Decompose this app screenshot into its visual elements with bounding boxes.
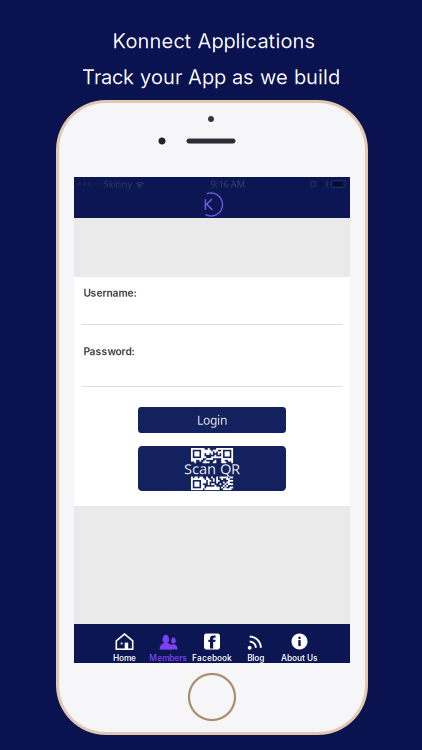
staticText: Username: xyxy=(83,287,136,299)
staticText: Facebook xyxy=(192,653,232,663)
button[interactable]: Blog xyxy=(234,624,278,663)
staticText: Members xyxy=(149,653,187,663)
staticText: About Us xyxy=(281,653,318,663)
button[interactable]: Login xyxy=(138,407,286,433)
staticText: Track your App as we build xyxy=(82,65,340,89)
staticText: Home xyxy=(113,653,136,663)
staticText: Scan QR xyxy=(184,459,240,478)
button[interactable]: Members xyxy=(146,624,190,663)
staticText: Blog xyxy=(247,653,264,663)
button[interactable]: About Us xyxy=(278,624,321,663)
staticText: Password: xyxy=(83,345,134,358)
button[interactable]: Scan QR xyxy=(138,446,286,491)
button[interactable]: Facebook xyxy=(190,624,234,663)
staticText: Skinny xyxy=(103,178,132,190)
button[interactable]: Home xyxy=(103,624,146,663)
staticText: Login xyxy=(197,412,227,428)
staticText: 9:16 AM xyxy=(211,178,245,190)
staticText: Konnect Applications xyxy=(112,29,315,53)
